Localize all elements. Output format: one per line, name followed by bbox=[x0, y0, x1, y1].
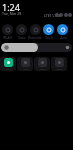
staticText: App bbox=[23, 67, 28, 70]
staticText: LTE1 LTE2 bbox=[44, 13, 61, 18]
staticText: 1:24 bbox=[2, 1, 20, 13]
staticText: Torch bbox=[45, 36, 53, 40]
staticText: WLAN bbox=[3, 36, 12, 40]
staticText: Tue, Mar 28 bbox=[2, 11, 22, 16]
button[interactable]: Status bbox=[64, 13, 68, 17]
button[interactable]: Quick setting bbox=[2, 24, 13, 35]
button[interactable]: Quick setting bbox=[30, 24, 41, 35]
staticText: App bbox=[6, 67, 11, 70]
button[interactable]: Status bbox=[55, 13, 59, 17]
button[interactable]: Quick setting bbox=[16, 24, 27, 35]
button[interactable]: Status bbox=[59, 13, 63, 17]
staticText: Auto bbox=[60, 36, 67, 40]
button[interactable]: Quick setting bbox=[43, 24, 54, 35]
staticText: App bbox=[40, 67, 45, 70]
button[interactable]: Brightness bbox=[1, 43, 72, 52]
button[interactable]: Shortcut bbox=[0, 57, 16, 71]
button[interactable]: Status bbox=[68, 13, 72, 17]
staticText: App bbox=[57, 67, 62, 70]
button[interactable]: Shortcut bbox=[17, 57, 33, 71]
button[interactable]: Quick setting bbox=[57, 24, 68, 35]
button[interactable]: Shortcut bbox=[51, 57, 67, 71]
staticText: Bluetooth bbox=[28, 36, 42, 40]
staticText: Data bbox=[18, 36, 25, 40]
button[interactable]: Shortcut bbox=[34, 57, 50, 71]
